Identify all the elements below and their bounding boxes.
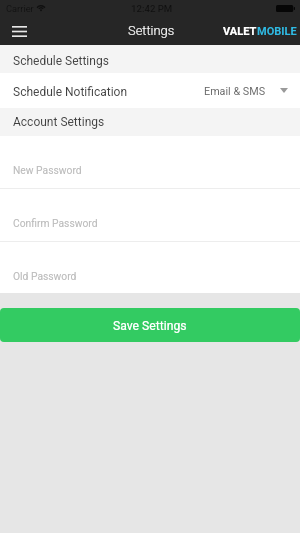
- button[interactable]: Account Settings: [0, 108, 300, 136]
- staticText: Settings: [128, 23, 175, 38]
- staticText: New Password: [13, 164, 82, 176]
- staticText: Schedule Settings: [13, 54, 109, 68]
- staticText: Old Password: [13, 270, 77, 282]
- button[interactable]: Schedule Notification: [0, 73, 300, 108]
- button[interactable]: Schedule Settings: [0, 45, 300, 73]
- staticText: Schedule Notification: [13, 85, 128, 99]
- button[interactable]: Open navigation menu: [0, 17, 38, 45]
- staticText: Save Settings: [113, 319, 187, 333]
- button[interactable]: VALET: [223, 17, 297, 45]
- staticText: Confirm Password: [13, 217, 98, 229]
- button[interactable]: Confirm Password: [0, 189, 300, 241]
- staticText: Email & SMS: [204, 85, 266, 98]
- button[interactable]: Save Settings: [0, 308, 300, 342]
- button[interactable]: Old Password: [0, 242, 300, 293]
- staticText: VALET: [223, 25, 257, 38]
- staticText: 12:42 PM: [131, 3, 173, 14]
- staticText: Account Settings: [13, 115, 105, 129]
- staticText: Carrier: [6, 3, 34, 14]
- button[interactable]: New Password: [0, 136, 300, 188]
- staticText: MOBILE: [257, 25, 297, 38]
